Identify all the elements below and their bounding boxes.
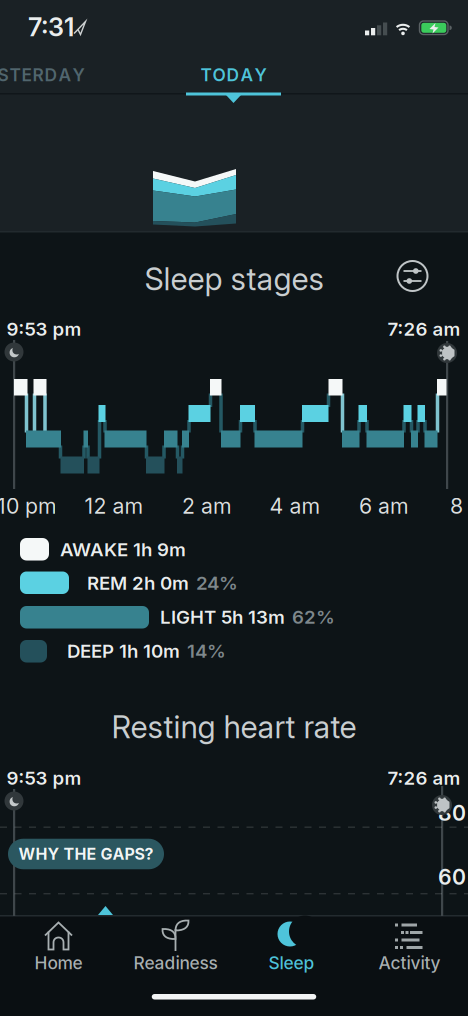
- staticText: 10 pm: [0, 493, 57, 519]
- staticText: WHY THE GAPS?: [18, 845, 153, 863]
- button[interactable]: Readiness: [0, 0, 468, 1016]
- staticText: AWAKE 1h 9m: [60, 538, 186, 560]
- staticText: Sleep stages: [144, 261, 323, 297]
- staticText: 62%: [292, 606, 335, 628]
- staticText: 7:26 am: [387, 767, 460, 789]
- staticText: LIGHT 5h 13m: [160, 606, 285, 628]
- staticText: 7:26 am: [387, 318, 460, 340]
- staticText: Y E S T E R D A Y: [0, 65, 84, 85]
- button[interactable]: Activity: [0, 0, 468, 1016]
- staticText: T O D A Y: [200, 65, 266, 85]
- staticText: 80: [438, 800, 466, 826]
- staticText: 9:53 pm: [6, 318, 81, 340]
- staticText: 8 am: [450, 493, 468, 519]
- staticText: 2 am: [182, 493, 232, 519]
- staticText: Resting heart rate: [111, 709, 356, 745]
- staticText: Home: [34, 953, 82, 973]
- staticText: 7:31: [28, 12, 74, 42]
- staticText: Readiness: [133, 953, 217, 973]
- staticText: 14%: [187, 640, 226, 662]
- staticText: 12 am: [84, 493, 143, 519]
- staticText: 6 am: [359, 493, 409, 519]
- button[interactable]: Y E S T E R D A Y: [0, 0, 468, 1016]
- button[interactable]: Sleep: [0, 0, 468, 1016]
- staticText: DEEP 1h 10m: [67, 640, 180, 662]
- staticText: 24%: [196, 572, 238, 594]
- staticText: REM 2h 0m: [87, 572, 189, 594]
- button[interactable]: T O D A Y: [0, 0, 468, 1016]
- staticText: 9:53 pm: [6, 767, 81, 789]
- button[interactable]: Home: [0, 0, 468, 1016]
- staticText: 60: [438, 864, 466, 890]
- staticText: 4 am: [269, 493, 320, 519]
- button[interactable]: [0, 0, 468, 1016]
- button[interactable]: WHY THE GAPS?: [0, 0, 468, 1016]
- staticText: Sleep: [268, 953, 314, 973]
- staticText: Activity: [378, 953, 440, 973]
